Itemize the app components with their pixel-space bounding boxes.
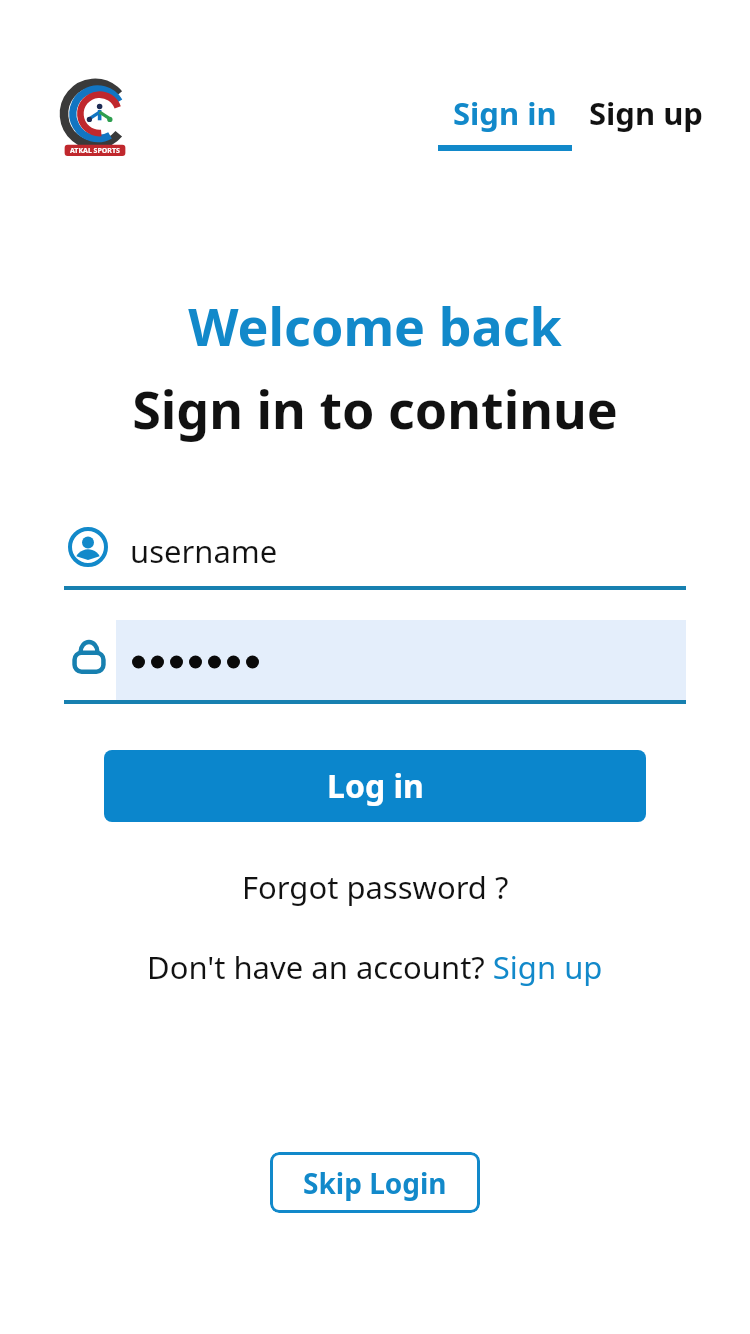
staticText: Don't have an account? Sign up [147, 946, 603, 988]
staticText: Skip Login [303, 1164, 447, 1202]
staticText: username [130, 530, 278, 572]
staticText: Sign up [589, 92, 703, 134]
staticText: Log in [327, 764, 424, 808]
button[interactable]: Skip Login [270, 1152, 480, 1213]
staticText: ATKAL SPORTS [70, 146, 120, 156]
button[interactable]: Log in [104, 750, 646, 822]
staticText: Forgot password ? [242, 866, 509, 908]
button[interactable]: Sign up [588, 92, 704, 134]
button[interactable]: Don't have an account? Sign up [135, 942, 615, 992]
button[interactable] [64, 618, 686, 704]
button[interactable]: Sign in [438, 92, 572, 151]
staticText: Welcome back [188, 290, 562, 361]
button[interactable]: Forgot password ? [226, 862, 525, 912]
other: Atkal Sports logo [62, 76, 128, 162]
staticText: Sign in to continue [132, 373, 618, 444]
button[interactable]: username [64, 512, 686, 590]
staticText: Sign in [453, 92, 557, 134]
